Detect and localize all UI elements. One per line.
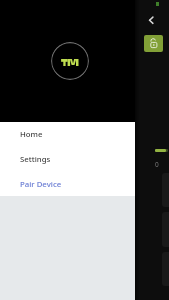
- staticText: Settings: [20, 154, 51, 165]
- button[interactable]: Close navigation drawer: [135, 0, 169, 300]
- staticText: Home: [20, 129, 43, 140]
- button[interactable]: TM account logo: [51, 42, 89, 80]
- button[interactable]: Settings: [0, 147, 135, 172]
- staticText: 0: [155, 160, 159, 169]
- button[interactable]: Unlock: [144, 35, 163, 52]
- button[interactable]: Pair Device: [0, 172, 135, 196]
- button[interactable]: Home: [0, 122, 135, 147]
- staticText: Pair Device: [20, 179, 62, 190]
- button[interactable]: Back: [145, 14, 157, 26]
